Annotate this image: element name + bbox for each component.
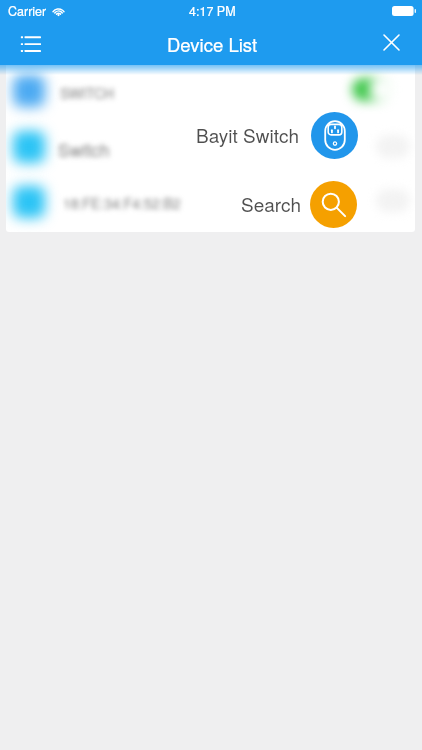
button[interactable]: SWITCH <box>6 63 415 119</box>
button[interactable]: Switch <box>6 119 415 175</box>
button[interactable]: Close <box>362 22 422 65</box>
staticText: 4:17 PM <box>189 2 236 20</box>
staticText: Carrier <box>8 2 47 20</box>
staticText: Switch <box>58 137 110 162</box>
button[interactable]: 18:FE:34:F4:52:B2 <box>6 174 415 230</box>
staticText: 18:FE:34:F4:52:B2 <box>63 193 181 213</box>
staticText: Bayit Switch <box>196 121 299 148</box>
staticText: Device List <box>167 31 258 57</box>
staticText: SWITCH <box>60 83 115 103</box>
staticText: Search <box>241 190 302 217</box>
button[interactable]: Menu <box>0 22 52 65</box>
